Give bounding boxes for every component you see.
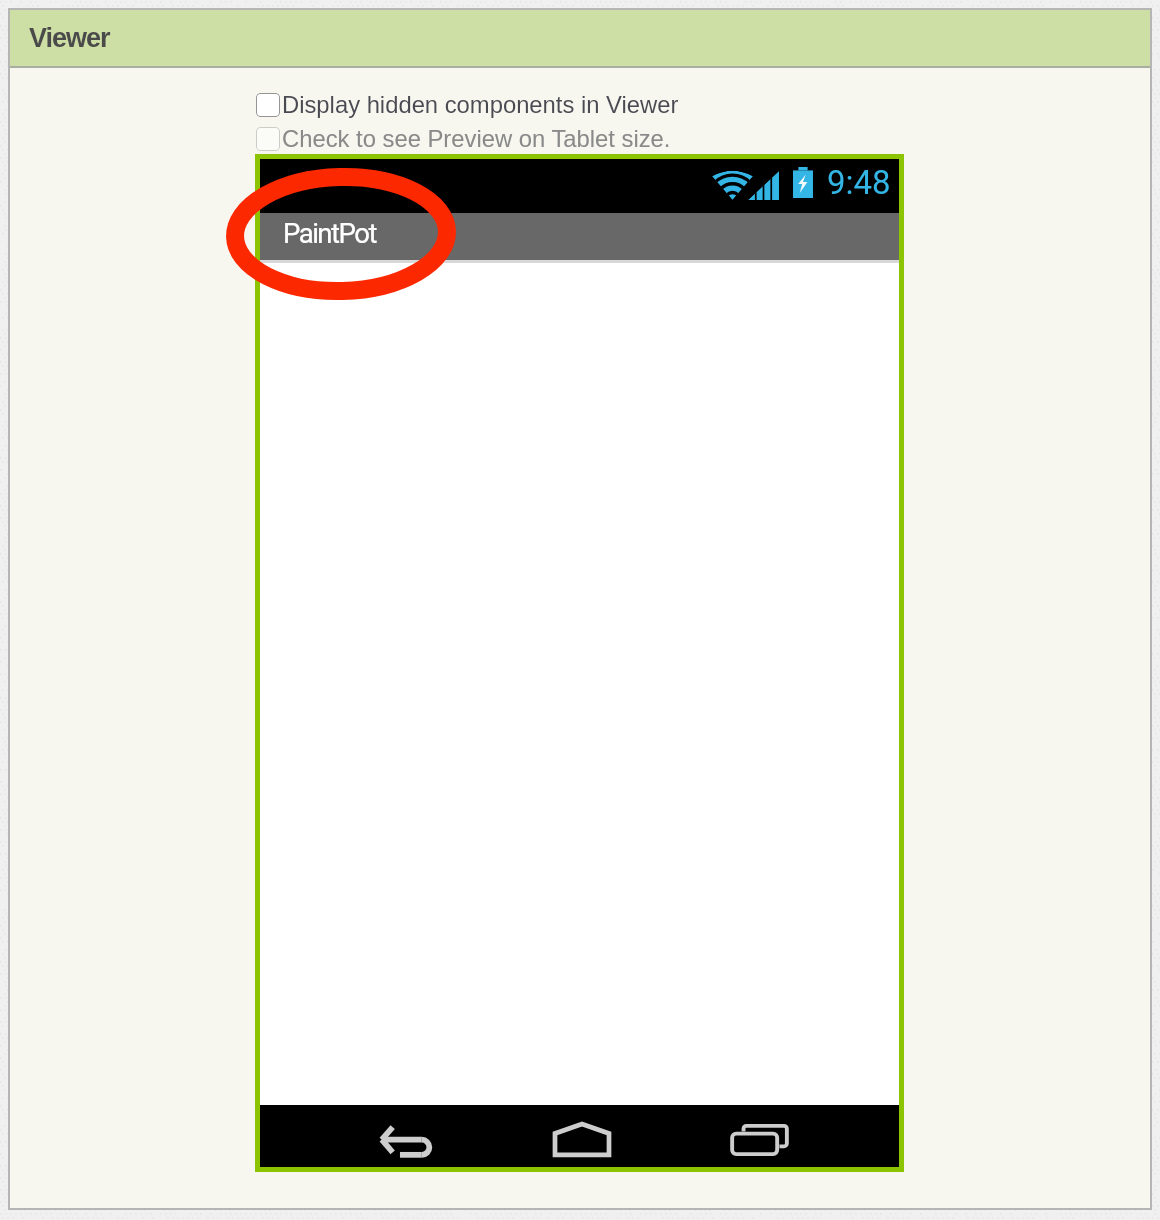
- button[interactable]: PaintPot: [260, 213, 899, 260]
- button[interactable]: Screen1 form canvas: [260, 263, 899, 1105]
- staticText: 9:48: [827, 163, 891, 202]
- button[interactable]: Display hidden components in Viewer: [256, 91, 679, 118]
- button[interactable]: Recent apps: [699, 1108, 819, 1170]
- staticText: Viewer: [29, 23, 110, 53]
- button[interactable]: Home: [522, 1108, 642, 1170]
- button[interactable]: Back: [345, 1108, 465, 1170]
- staticText: Display hidden components in Viewer: [282, 91, 679, 118]
- staticText: Check to see Preview on Tablet size.: [282, 125, 671, 152]
- button[interactable]: Check to see Preview on Tablet size.: [256, 125, 671, 152]
- staticText: PaintPot: [283, 217, 376, 249]
